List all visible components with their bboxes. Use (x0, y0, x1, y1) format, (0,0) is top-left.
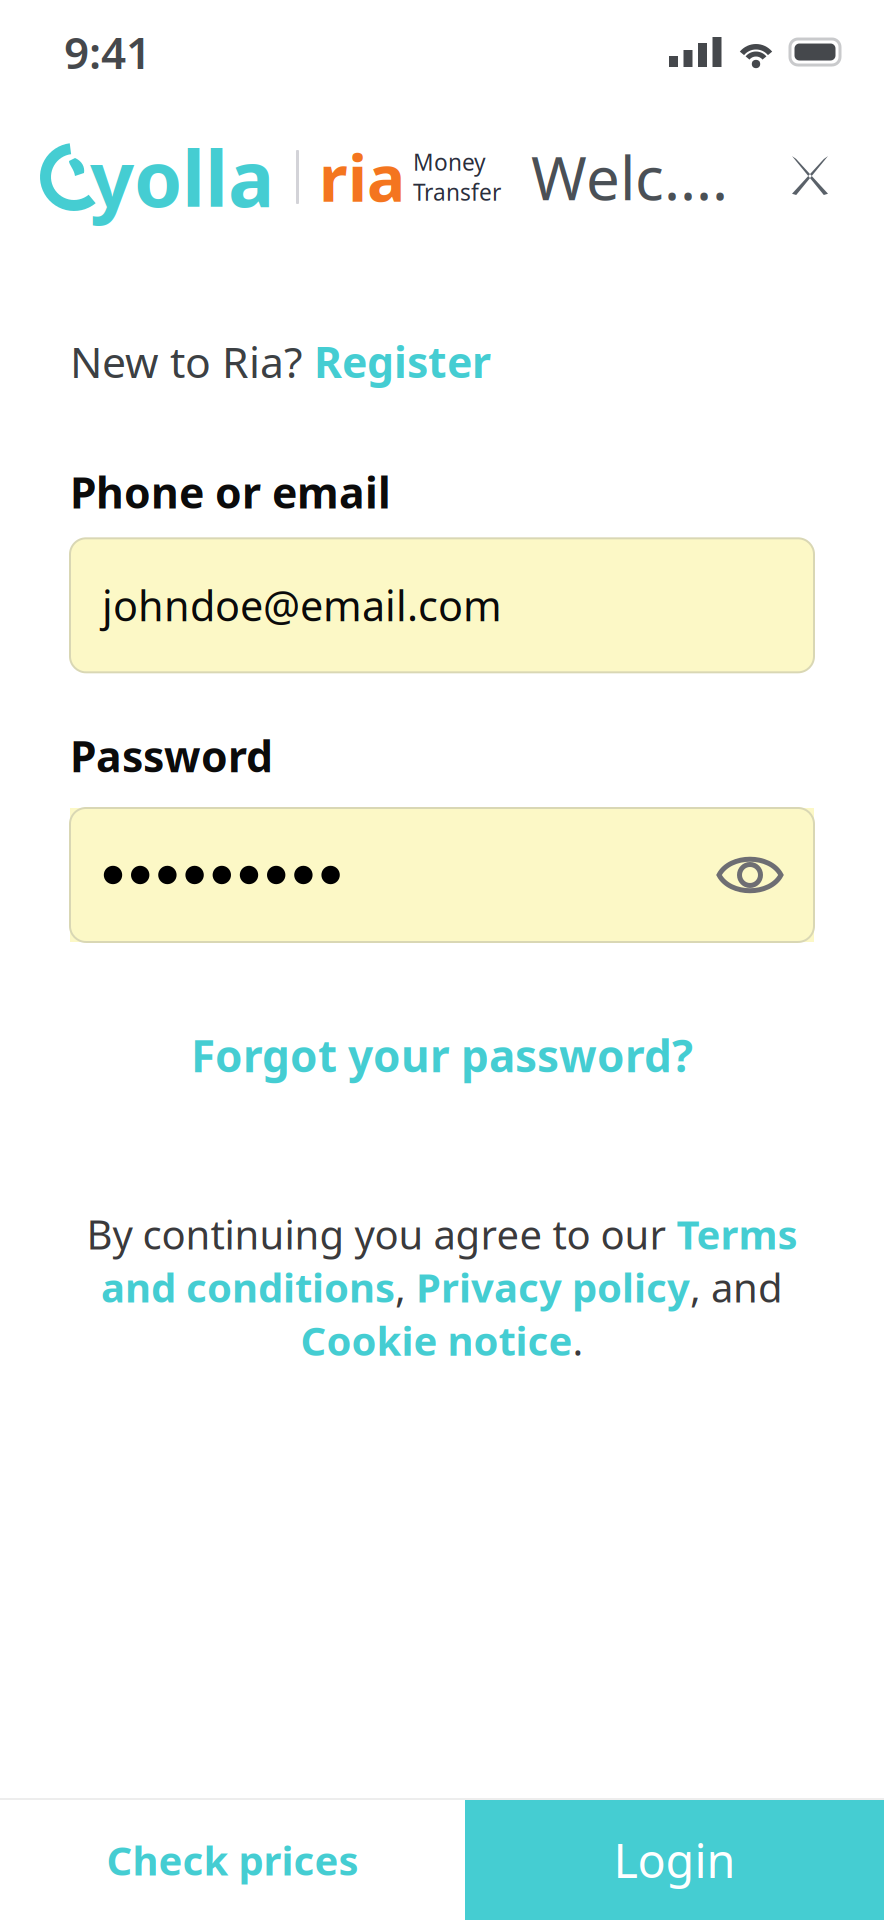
button[interactable]: and conditions (101, 1260, 395, 1314)
button[interactable]: johndoe@email.com (70, 538, 814, 672)
button[interactable]: Privacy policy (416, 1260, 690, 1314)
staticText: Phone or email (70, 464, 391, 520)
staticText: Login (613, 1829, 735, 1891)
staticText: , and (690, 1260, 783, 1314)
staticText: Transfer (413, 177, 501, 207)
staticText: Cookie notice (300, 1314, 572, 1367)
button[interactable]: Check prices (0, 1800, 465, 1920)
staticText: , (395, 1260, 416, 1314)
button[interactable]: Login (465, 1800, 884, 1920)
staticText: Welc.... (531, 137, 728, 217)
button[interactable]: Close (788, 155, 832, 199)
button[interactable]: Cookie notice (300, 1314, 572, 1367)
button[interactable]: Register (314, 333, 491, 390)
button[interactable]: Terms (676, 1207, 797, 1260)
staticText: johndoe@email.com (102, 578, 502, 633)
staticText: and conditions (101, 1260, 395, 1314)
staticText: . (572, 1314, 583, 1367)
staticText: By continuing you agree to our (86, 1207, 676, 1260)
staticText: Register (314, 333, 491, 390)
staticText: Check prices (106, 1833, 358, 1886)
button[interactable]: Password field (70, 808, 814, 942)
button[interactable]: Forgot your password? (191, 1026, 693, 1084)
staticText: Terms (676, 1207, 797, 1260)
staticText: Password (70, 727, 273, 784)
staticText: Forgot your password? (191, 1026, 693, 1084)
staticText: yolla (90, 126, 274, 228)
button[interactable]: Show password (716, 852, 784, 898)
staticText: Privacy policy (416, 1260, 690, 1314)
staticText: ria (319, 134, 405, 219)
staticText: 9:41 (64, 23, 151, 81)
staticText: Money (413, 147, 486, 177)
staticText: New to Ria? (70, 333, 314, 390)
